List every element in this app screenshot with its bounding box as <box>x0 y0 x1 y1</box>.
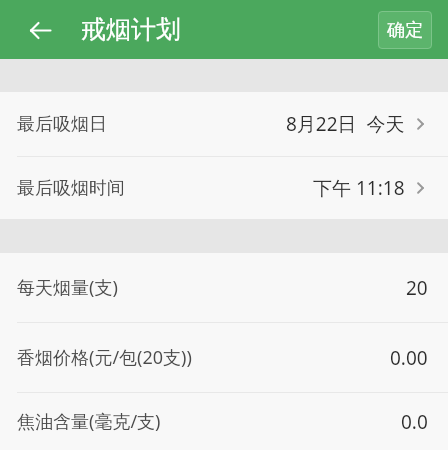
staticText: 0.00 <box>390 345 428 371</box>
button[interactable]: 最后吸烟时间 <box>0 157 448 219</box>
button[interactable]: 每天烟量(支) <box>0 253 448 322</box>
button[interactable]: 确定 <box>378 11 432 49</box>
button[interactable]: Back <box>22 12 58 48</box>
staticText: 戒烟计划 <box>81 14 181 45</box>
button[interactable]: 香烟价格(元/包(20支)) <box>0 323 448 392</box>
staticText: 下午 11:18 <box>313 175 405 201</box>
staticText: 确定 <box>387 19 423 42</box>
staticText: 香烟价格(元/包(20支)) <box>17 345 192 370</box>
button[interactable]: 焦油含量(毫克/支) <box>0 393 448 450</box>
button[interactable]: 最后吸烟日 <box>0 92 448 156</box>
staticText: 8月22日 今天 <box>286 111 405 137</box>
staticText: 最后吸烟时间 <box>17 177 125 200</box>
staticText: 焦油含量(毫克/支) <box>17 409 161 434</box>
staticText: 最后吸烟日 <box>17 113 107 136</box>
staticText: 20 <box>406 275 428 301</box>
staticText: 每天烟量(支) <box>17 275 118 300</box>
staticText: 0.0 <box>401 409 428 435</box>
